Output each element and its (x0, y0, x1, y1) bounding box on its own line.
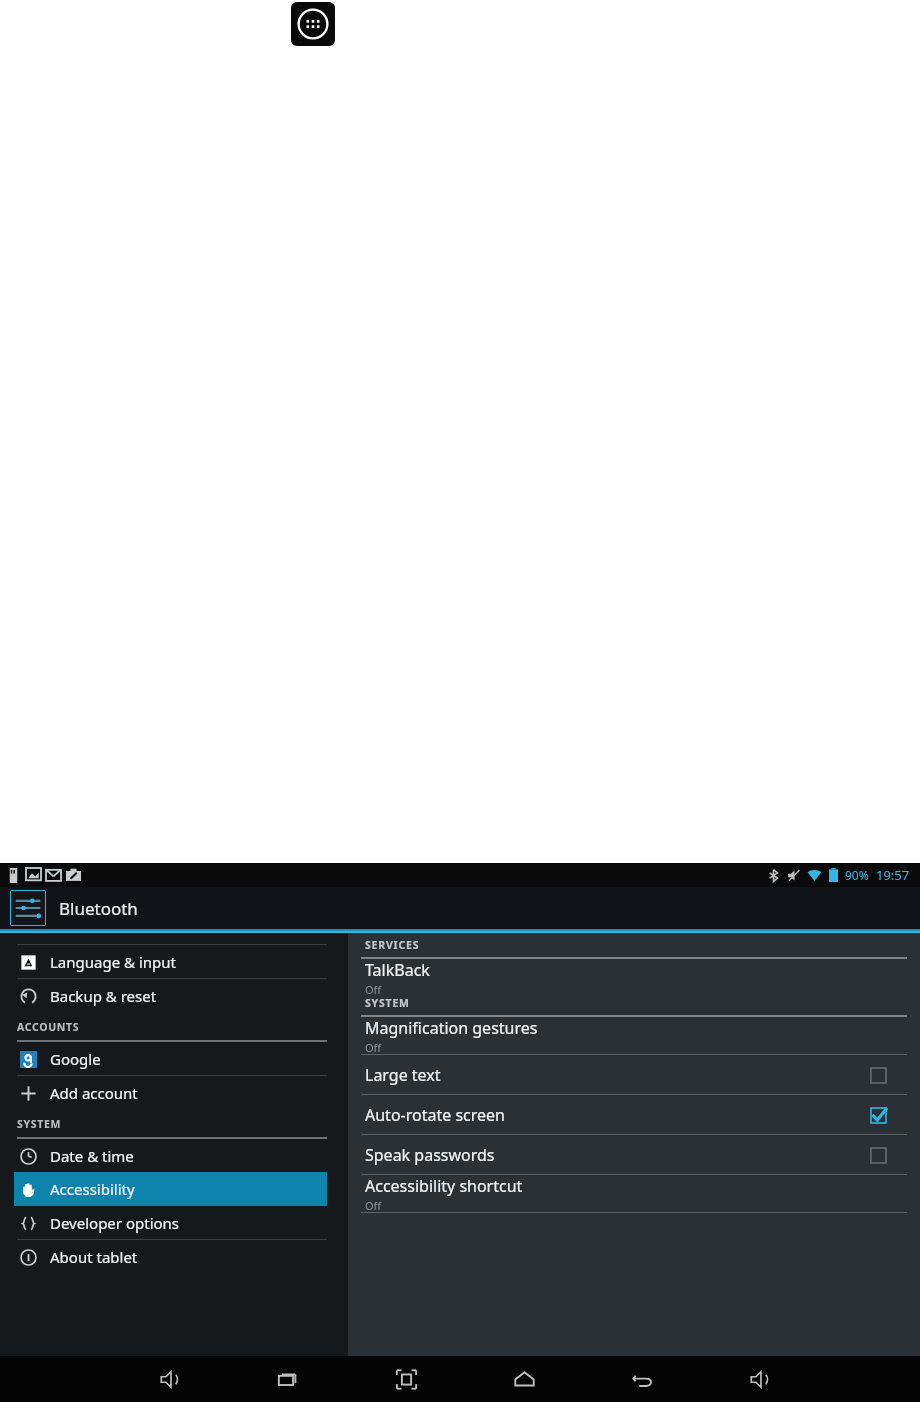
button[interactable]: Screenshot (384, 1357, 428, 1401)
staticText: Off (365, 1198, 382, 1212)
staticText: SERVICES (365, 938, 420, 952)
button[interactable]: Volume down (148, 1357, 192, 1401)
button[interactable]: Date & time (14, 1139, 327, 1172)
button[interactable]: Speak passwords (348, 1135, 920, 1174)
button[interactable]: Google (14, 1042, 327, 1075)
staticText: Bluetooth (59, 897, 138, 920)
button[interactable]: Language & input (14, 945, 327, 978)
staticText: Accessibility (50, 1179, 135, 1199)
staticText: Auto-rotate screen (365, 1104, 505, 1126)
button[interactable]: Accessibility (14, 1172, 327, 1206)
staticText: Date & time (50, 1146, 134, 1166)
staticText: Off (365, 1040, 382, 1054)
staticText: SYSTEM (17, 1117, 62, 1131)
button[interactable]: TalkBack (348, 959, 920, 996)
staticText: Language & input (50, 952, 176, 972)
staticText: About tablet (50, 1247, 138, 1267)
button[interactable]: Recent apps (266, 1357, 310, 1401)
staticText: Speak passwords (365, 1144, 495, 1166)
staticText: Accessibility shortcut (365, 1175, 523, 1197)
button[interactable]: Speak passwords (868, 1145, 888, 1165)
button[interactable]: Apps (291, 2, 335, 46)
button[interactable]: Back (620, 1357, 664, 1401)
staticText: 90% (845, 867, 869, 883)
staticText: Off (365, 982, 382, 996)
staticText: Google (50, 1049, 101, 1069)
button[interactable]: Volume up (738, 1357, 782, 1401)
button[interactable]: Add account (14, 1076, 327, 1109)
staticText: Magnification gestures (365, 1017, 538, 1039)
button[interactable]: Accessibility shortcut (348, 1175, 920, 1212)
button[interactable]: Bluetooth (0, 887, 920, 929)
button[interactable]: About tablet (14, 1240, 327, 1273)
button[interactable]: Auto-rotate screen (348, 1095, 920, 1134)
button[interactable]: Auto-rotate screen (868, 1105, 888, 1125)
button[interactable]: Backup & reset (14, 979, 327, 1012)
staticText: 19:57 (876, 866, 910, 884)
staticText: TalkBack (365, 959, 430, 981)
staticText: ACCOUNTS (17, 1020, 80, 1034)
staticText: Developer options (50, 1213, 180, 1233)
staticText: SYSTEM (365, 996, 410, 1010)
button[interactable]: Home (502, 1357, 546, 1401)
staticText: Large text (365, 1064, 441, 1086)
button[interactable]: Magnification gestures (348, 1017, 920, 1054)
button[interactable]: Developer options (14, 1206, 327, 1239)
staticText: Add account (50, 1083, 138, 1103)
button[interactable]: Large text (868, 1065, 888, 1085)
button[interactable]: Large text (348, 1055, 920, 1094)
staticText: Backup & reset (50, 986, 157, 1006)
